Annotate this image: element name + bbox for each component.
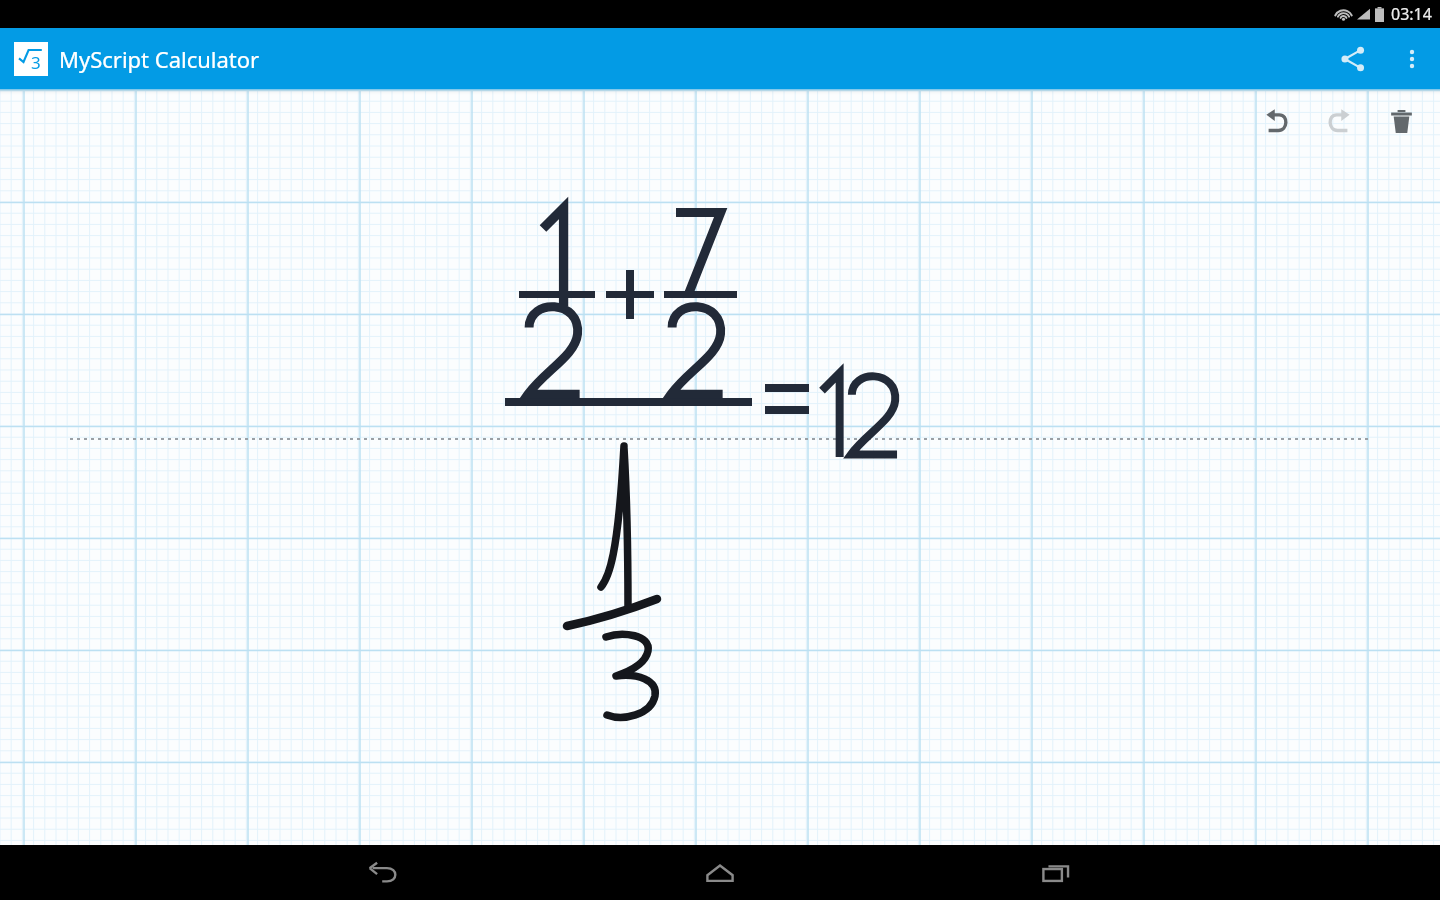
- staticText: MyScript Calculator: [59, 44, 260, 74]
- button[interactable]: Share: [1322, 28, 1384, 90]
- button[interactable]: More options: [1384, 31, 1440, 87]
- staticText: 03:14: [1391, 3, 1432, 25]
- button[interactable]: Undo: [1250, 94, 1304, 148]
- button[interactable]: Home: [684, 845, 756, 900]
- button[interactable]: Recent apps: [1020, 845, 1092, 900]
- button[interactable]: Clear: [1374, 94, 1428, 148]
- staticText: 3: [31, 51, 41, 74]
- button[interactable]: Redo: [1312, 94, 1366, 148]
- button[interactable]: Back: [348, 845, 420, 900]
